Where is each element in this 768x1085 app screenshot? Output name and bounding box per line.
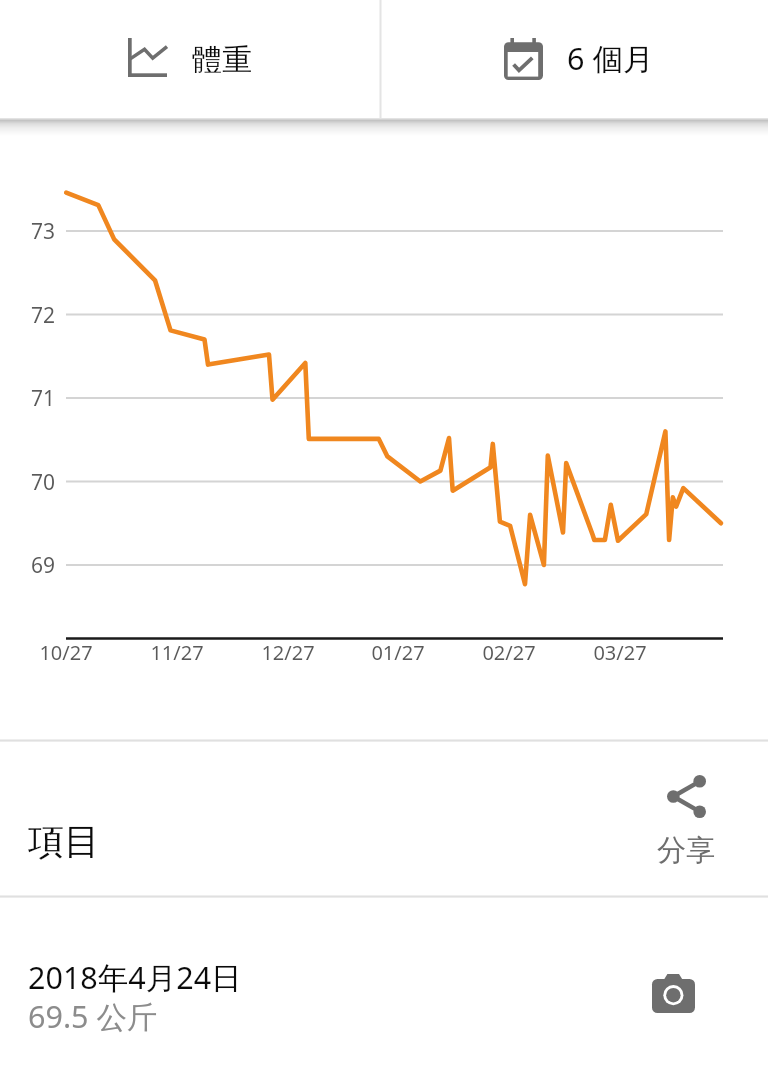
button[interactable]: 6 個月 bbox=[382, 0, 768, 118]
staticText: 11/27 bbox=[150, 639, 204, 666]
staticText: 02/27 bbox=[482, 639, 536, 666]
staticText: 12/27 bbox=[261, 639, 315, 666]
staticText: 71 bbox=[30, 384, 55, 413]
button[interactable]: 分享 bbox=[647, 775, 725, 869]
button[interactable]: Take photo bbox=[637, 961, 709, 1025]
staticText: 69.5 公斤 bbox=[28, 995, 158, 1037]
staticText: 分享 bbox=[657, 832, 715, 869]
staticText: 73 bbox=[30, 217, 55, 246]
staticText: 體重 bbox=[192, 41, 252, 79]
button[interactable]: 體重 bbox=[0, 0, 379, 118]
staticText: 03/27 bbox=[593, 639, 647, 666]
staticText: 6 個月 bbox=[567, 37, 654, 79]
staticText: 69 bbox=[30, 551, 55, 580]
staticText: 項目 bbox=[28, 819, 100, 864]
staticText: 2018年4月24日 bbox=[28, 956, 242, 998]
staticText: 10/27 bbox=[39, 639, 93, 666]
button[interactable]: 2018年4月24日 bbox=[0, 897, 768, 1085]
staticText: 70 bbox=[30, 468, 55, 497]
staticText: 72 bbox=[30, 301, 55, 330]
staticText: 01/27 bbox=[371, 639, 425, 666]
